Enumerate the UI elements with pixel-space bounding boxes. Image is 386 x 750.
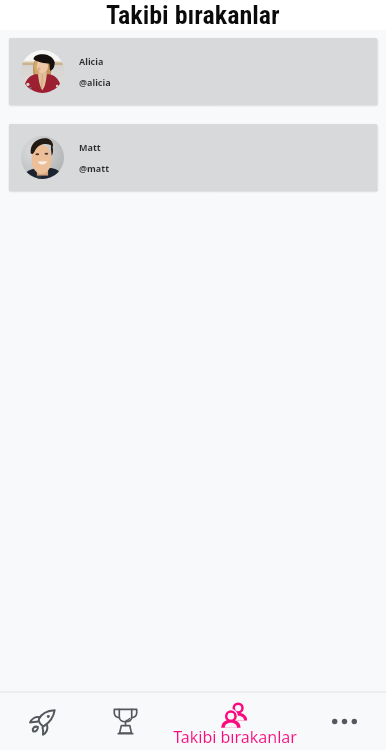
staticText: Takibi bırakanlar — [106, 0, 280, 30]
staticText: @alicia — [79, 76, 111, 88]
button[interactable]: Takibi bırakanlar — [166, 693, 302, 750]
button[interactable]: Alicia — [9, 38, 377, 105]
button[interactable]: Trophy — [84, 693, 166, 750]
button[interactable]: Matt — [9, 124, 377, 191]
staticText: Takibi bırakanlar — [173, 726, 297, 747]
staticText: Alicia — [79, 55, 104, 67]
staticText: Matt — [79, 141, 101, 153]
staticText: @matt — [79, 162, 110, 174]
button[interactable]: Rocket — [0, 693, 84, 750]
button[interactable]: More — [302, 693, 386, 750]
